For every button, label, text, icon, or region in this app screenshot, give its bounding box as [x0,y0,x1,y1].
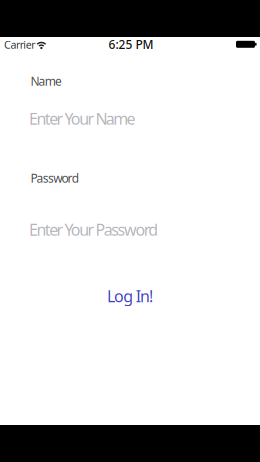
button[interactable]: Log In! [85,282,175,310]
button[interactable]: Enter Your Name [29,105,229,131]
staticText: Log In! [107,285,153,307]
staticText: Name [30,73,62,89]
staticText: Carrier [4,38,35,52]
staticText: Enter Your Password [29,219,158,240]
button[interactable]: Enter Your Password [29,216,229,242]
staticText: 6:25 PM [108,36,153,52]
staticText: Enter Your Name [29,108,136,129]
staticText: Password [30,170,79,186]
